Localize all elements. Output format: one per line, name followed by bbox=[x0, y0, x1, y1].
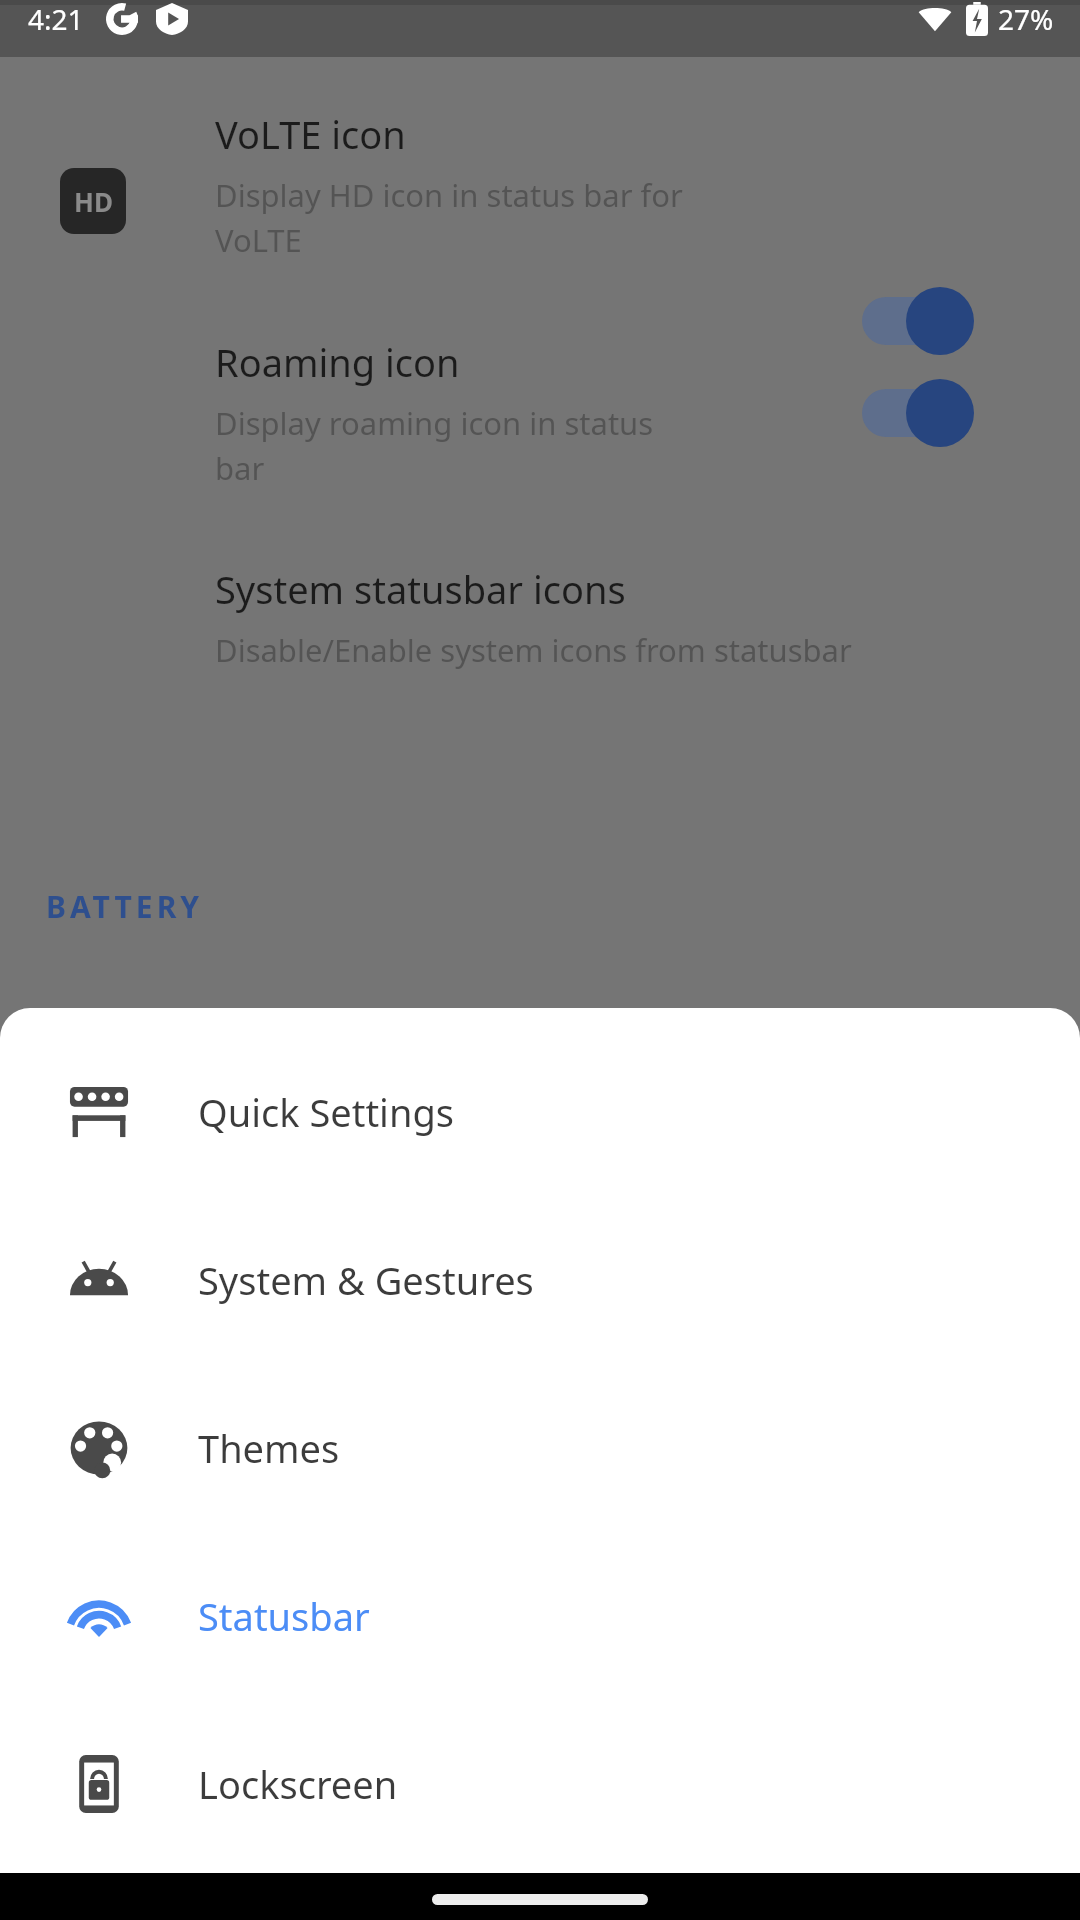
staticText: 27% bbox=[998, 0, 1054, 38]
staticText: Statusbar bbox=[198, 1590, 370, 1642]
other: Lockscreen bbox=[66, 1751, 132, 1817]
staticText: Themes bbox=[198, 1422, 340, 1474]
staticText: Lockscreen bbox=[198, 1758, 398, 1810]
other: Themes bbox=[66, 1415, 132, 1481]
button[interactable]: Themes bbox=[0, 1364, 1080, 1532]
staticText: Roaming icon bbox=[215, 336, 460, 388]
staticText: BATTERY bbox=[46, 886, 204, 927]
staticText: Display HD icon in status bar for VoLTE bbox=[215, 174, 683, 261]
button[interactable]: Quick Settings bbox=[0, 1028, 1080, 1196]
staticText: System statusbar icons bbox=[215, 563, 626, 615]
staticText: HD bbox=[74, 184, 113, 219]
other: System & Gestures bbox=[66, 1247, 132, 1313]
staticText: Disable/Enable system icons from statusb… bbox=[215, 629, 852, 671]
button[interactable]: Statusbar bbox=[0, 1532, 1080, 1700]
other: Statusbar bbox=[66, 1583, 132, 1649]
button[interactable]: System & Gestures bbox=[0, 1196, 1080, 1364]
staticText: Quick Settings bbox=[198, 1086, 454, 1138]
staticText: VoLTE icon bbox=[215, 108, 406, 160]
staticText: Display roaming icon in status bar bbox=[215, 402, 654, 489]
staticText: 4:21 bbox=[28, 0, 84, 38]
button[interactable]: Lockscreen bbox=[0, 1700, 1080, 1868]
staticText: System & Gestures bbox=[198, 1254, 534, 1306]
other: Quick Settings bbox=[66, 1079, 132, 1145]
